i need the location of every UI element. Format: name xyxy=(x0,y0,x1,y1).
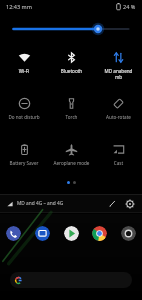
other: Torch xyxy=(65,97,78,110)
other: Wi-Fi xyxy=(18,51,31,64)
staticText: Battery Saver xyxy=(0,160,48,166)
staticText: Bluetooth xyxy=(48,68,95,74)
staticText: Do not disturb xyxy=(0,114,48,120)
other: Aeroplane mode xyxy=(65,143,78,156)
button[interactable]: Auto-rotate xyxy=(95,92,142,130)
staticText: Cast xyxy=(95,160,142,166)
button[interactable]: Battery Saver xyxy=(0,138,48,176)
button[interactable]: Settings xyxy=(123,197,136,210)
button[interactable]: Cast xyxy=(95,138,142,176)
other: MD anabend mb xyxy=(112,51,125,64)
other: Cast xyxy=(112,143,125,156)
button[interactable]: Edit tiles xyxy=(106,197,119,210)
staticText: Auto-rotate xyxy=(95,114,142,120)
other: Bluetooth xyxy=(65,51,78,64)
staticText: Aeroplane mode xyxy=(48,160,95,166)
staticText: MD anabend mb xyxy=(95,68,142,80)
button[interactable]: Torch xyxy=(48,92,95,130)
other: Battery Saver xyxy=(18,143,31,156)
button[interactable]: Play Store xyxy=(64,226,79,241)
button[interactable]: MD anabend mb xyxy=(95,46,142,84)
button[interactable] xyxy=(12,22,130,36)
staticText: Torch xyxy=(48,114,95,120)
other: Do not disturb xyxy=(18,97,31,110)
button[interactable]: Wi-Fi xyxy=(0,46,48,84)
button[interactable]: Signal strength xyxy=(6,200,14,208)
button[interactable]: Google search xyxy=(10,272,132,288)
button[interactable]: Do not disturb xyxy=(0,92,48,130)
other: Auto-rotate xyxy=(112,97,125,110)
other: Signal strength xyxy=(7,201,13,207)
button[interactable]: Aeroplane mode xyxy=(48,138,95,176)
staticText: MD and 4G – and 4G xyxy=(17,200,64,207)
staticText: 12:43 mm xyxy=(6,3,32,10)
button[interactable]: Camera xyxy=(121,226,136,241)
staticText: Wi-Fi xyxy=(0,68,48,74)
staticText: 24 % xyxy=(123,3,136,10)
button[interactable]: Messages xyxy=(35,226,50,241)
button[interactable]: Bluetooth xyxy=(48,46,95,84)
button[interactable]: Phone xyxy=(6,226,21,241)
button[interactable]: Chrome xyxy=(92,226,107,241)
